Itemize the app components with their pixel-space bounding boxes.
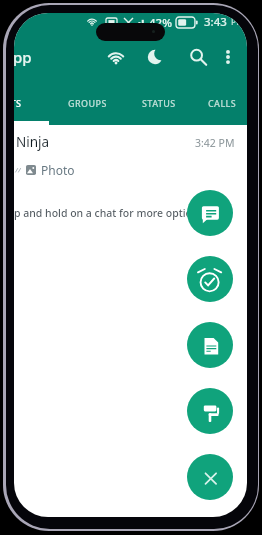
staticText: p and hold on a chat for more options — [14, 206, 204, 220]
staticText: STATUS — [142, 97, 176, 109]
button[interactable]: Theme — [187, 388, 233, 434]
button[interactable]: GROUPS — [57, 89, 117, 117]
button[interactable]: CALLS — [192, 89, 247, 117]
staticText: GROUPS — [68, 97, 107, 109]
staticText: PM — [231, 16, 244, 28]
button[interactable]: More options — [213, 42, 243, 72]
button[interactable]: Ninja — [14, 126, 247, 178]
button[interactable]: STATUS — [129, 89, 189, 117]
staticText: Photo — [41, 162, 75, 178]
staticText: 3:43 — [204, 14, 227, 30]
staticText: ATS — [14, 97, 22, 109]
button[interactable]: ATS — [14, 89, 43, 117]
button[interactable]: Close — [187, 454, 233, 500]
button[interactable]: Reminder — [187, 256, 233, 302]
button[interactable]: New chat — [187, 190, 233, 236]
button[interactable]: Wi-Fi — [101, 42, 131, 72]
staticText: 3:42 PM — [195, 136, 235, 150]
staticText: pp — [14, 47, 32, 67]
button[interactable]: Search — [183, 42, 213, 72]
staticText: Ninja — [16, 133, 50, 151]
staticText: CALLS — [208, 97, 237, 109]
button[interactable]: Dark mode — [140, 42, 170, 72]
button[interactable]: Document — [187, 322, 233, 368]
staticText: 42% — [149, 15, 172, 31]
